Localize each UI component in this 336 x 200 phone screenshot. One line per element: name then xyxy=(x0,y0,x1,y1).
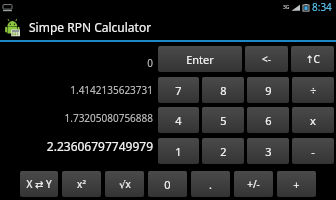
button[interactable]: x xyxy=(292,107,334,133)
staticText: 0 xyxy=(164,177,171,192)
button[interactable]: 6 xyxy=(247,107,289,133)
staticText: 9 xyxy=(265,83,272,98)
button[interactable]: <- xyxy=(245,46,288,72)
button[interactable]: 1.4142135623731 xyxy=(70,83,153,97)
button[interactable]: 2.23606797749979 xyxy=(46,138,153,154)
button[interactable]: - xyxy=(292,138,334,164)
staticText: x² xyxy=(77,177,86,191)
staticText: ↑C xyxy=(305,52,320,66)
button[interactable]: ÷ xyxy=(292,77,334,103)
button[interactable]: 5 xyxy=(202,107,244,133)
button[interactable]: x² xyxy=(62,171,101,197)
staticText: 7 xyxy=(175,83,182,98)
button[interactable]: 3 xyxy=(247,138,289,164)
button[interactable]: √x xyxy=(105,171,144,197)
button[interactable]: 1.73205080756888 xyxy=(64,111,153,125)
button[interactable]: 0 xyxy=(148,171,187,197)
staticText: - xyxy=(311,144,315,159)
staticText: √x xyxy=(119,177,131,191)
button[interactable]: 9 xyxy=(247,77,289,103)
staticText: ÷ xyxy=(310,83,317,98)
staticText: 8:34 xyxy=(312,0,332,14)
staticText: 8 xyxy=(220,83,227,98)
staticText: . xyxy=(209,177,212,192)
staticText: 2 xyxy=(220,144,227,159)
staticText: 1 xyxy=(175,144,182,159)
staticText: 3 xyxy=(265,144,272,159)
staticText: Enter xyxy=(186,52,214,67)
staticText: X ⇄ Y xyxy=(26,177,52,191)
button[interactable]: 0 xyxy=(147,56,153,70)
staticText: 6 xyxy=(265,113,272,128)
button[interactable]: + xyxy=(277,171,316,197)
button[interactable]: Simpe RPN Calculator xyxy=(0,14,336,40)
button[interactable]: 1 xyxy=(158,138,199,164)
button[interactable]: 7 xyxy=(158,77,199,103)
staticText: + xyxy=(293,177,300,192)
button[interactable]: ↑C xyxy=(291,46,334,72)
button[interactable]: Enter xyxy=(158,46,242,72)
staticText: <- xyxy=(262,52,271,66)
staticText: 5 xyxy=(220,113,227,128)
staticText: x xyxy=(310,113,316,128)
button[interactable]: 2 xyxy=(202,138,244,164)
staticText: Simpe RPN Calculator xyxy=(29,19,152,35)
button[interactable]: . xyxy=(191,171,230,197)
button[interactable]: +/- xyxy=(234,171,273,197)
button[interactable]: 8 xyxy=(202,77,244,103)
button[interactable]: 4 xyxy=(158,107,199,133)
staticText: +/- xyxy=(247,177,260,191)
staticText: 4 xyxy=(175,113,182,128)
staticText: 3G xyxy=(283,4,290,11)
button[interactable]: X ⇄ Y xyxy=(20,171,58,197)
